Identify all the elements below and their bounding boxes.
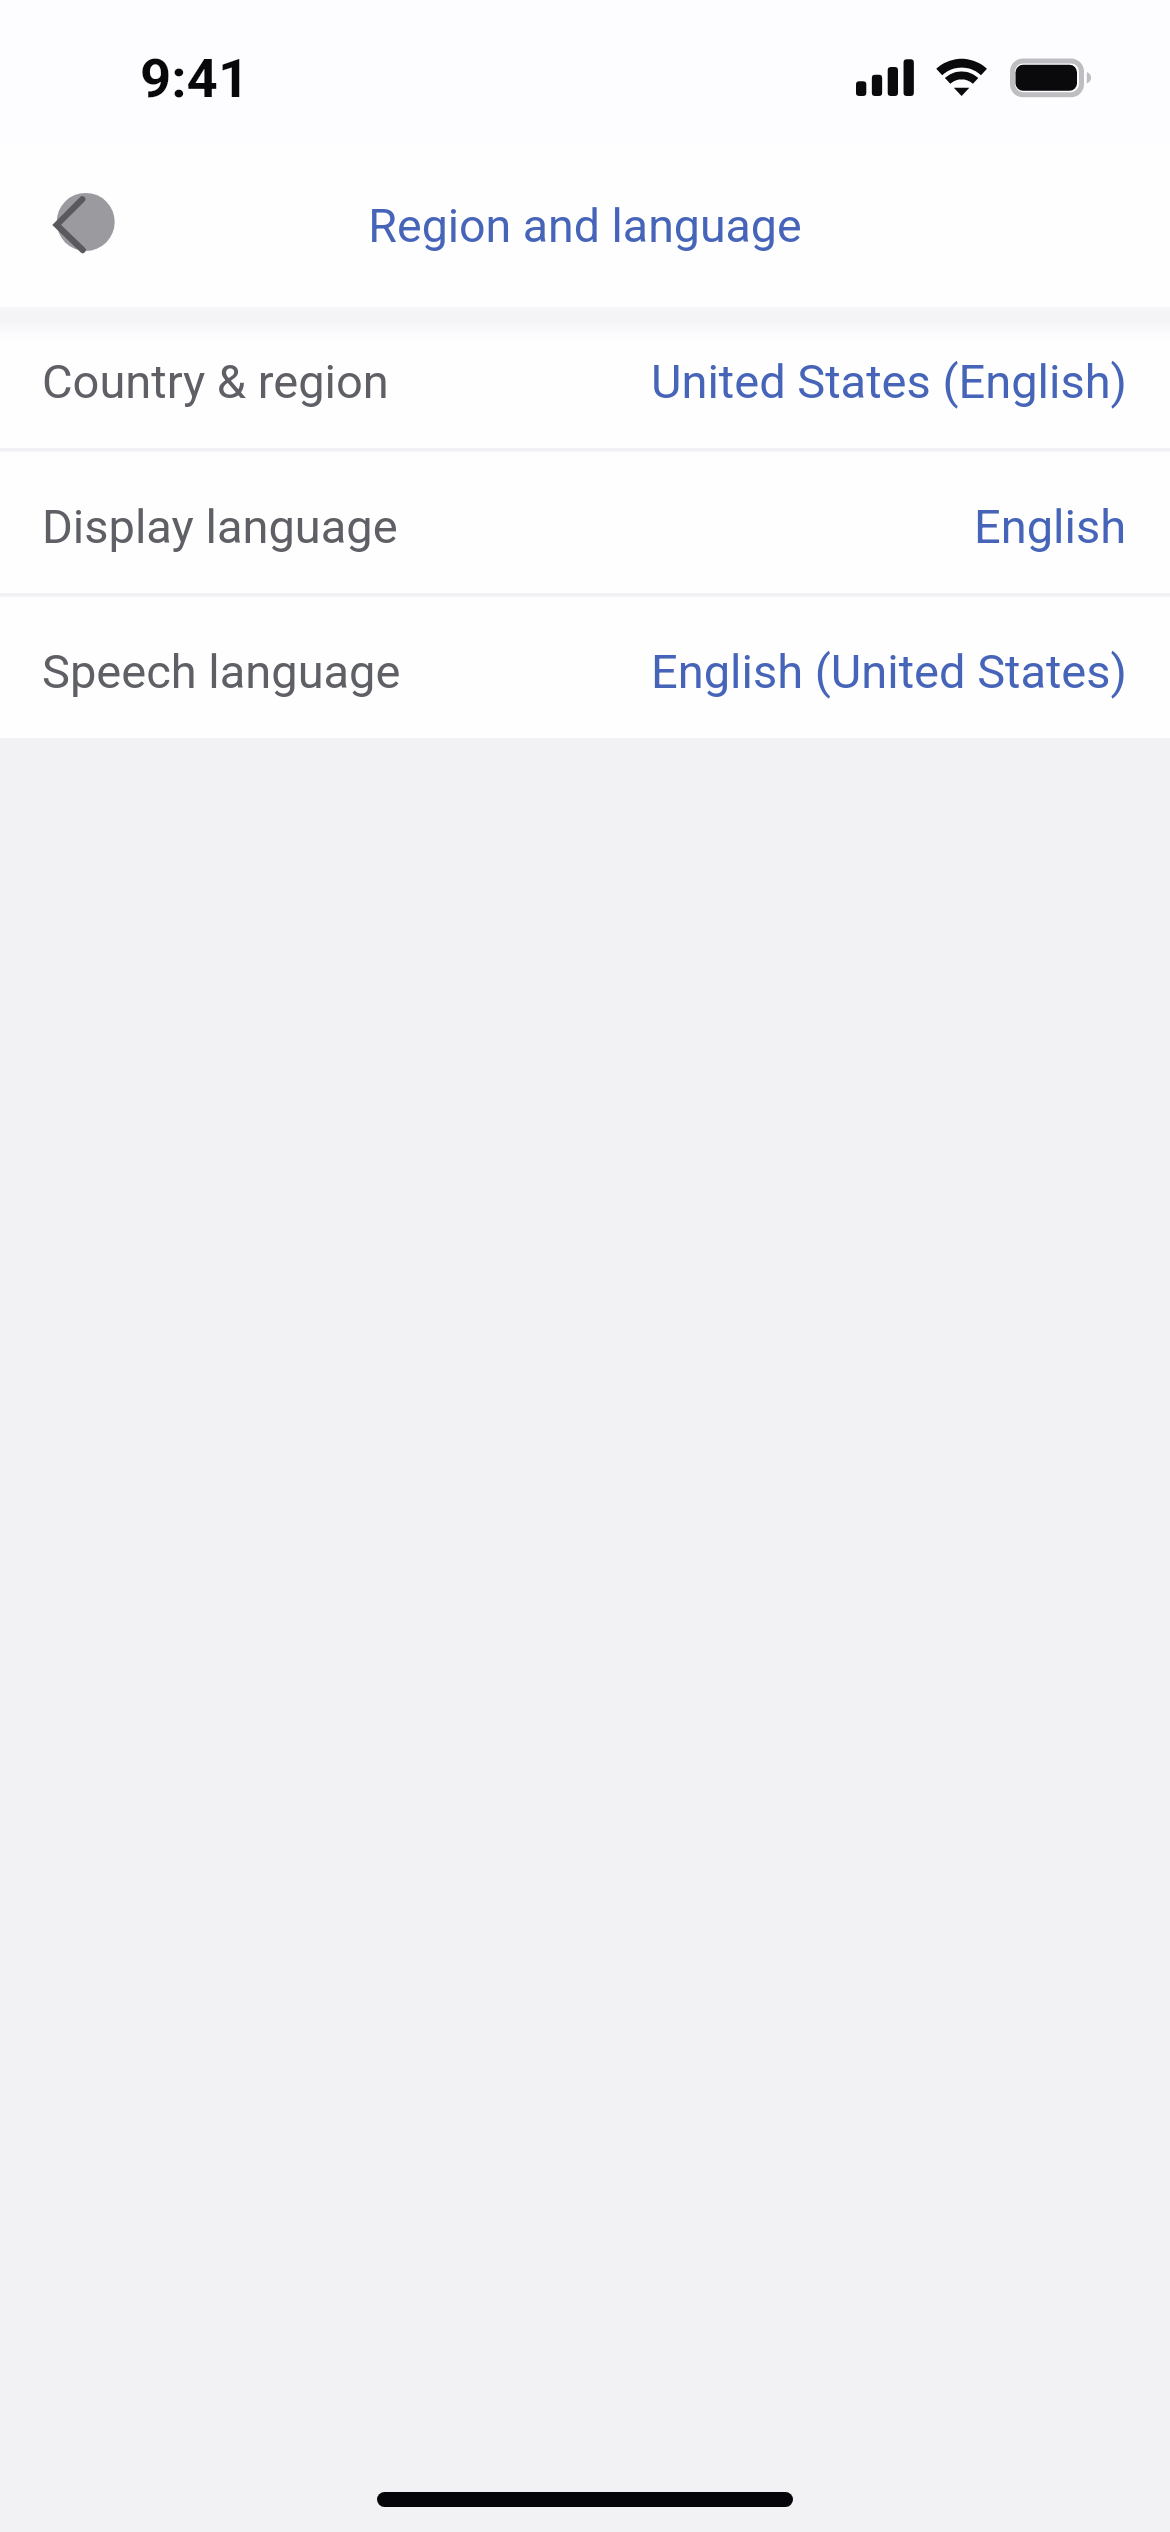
staticText: Region and language bbox=[0, 199, 1170, 253]
staticText: Country & region bbox=[42, 354, 389, 409]
button[interactable]: Speech language bbox=[0, 597, 1170, 738]
staticText: 9:41 bbox=[140, 46, 250, 110]
staticText: Speech language bbox=[42, 644, 401, 699]
button[interactable]: Display language bbox=[0, 452, 1170, 593]
staticText: United States (English) bbox=[651, 354, 1127, 409]
staticText: English bbox=[974, 499, 1127, 554]
staticText: Display language bbox=[42, 499, 398, 554]
staticText: English (United States) bbox=[651, 644, 1127, 699]
button[interactable]: Back bbox=[46, 182, 126, 262]
button[interactable]: Country & region bbox=[0, 307, 1170, 448]
